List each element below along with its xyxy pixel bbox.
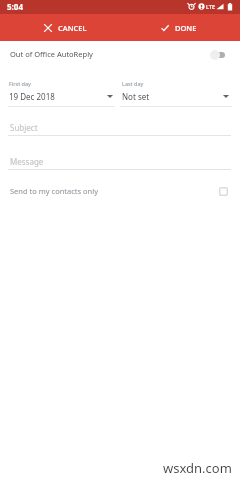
- staticText: DONE: [175, 23, 197, 33]
- staticText: CANCEL: [58, 23, 87, 33]
- staticText: Last day: [122, 80, 144, 87]
- staticText: Not set: [122, 91, 150, 102]
- staticText: LTE: [206, 3, 215, 10]
- staticText: Send to my contacts only: [10, 186, 98, 196]
- button[interactable]: DONE: [161, 23, 197, 33]
- staticText: First day: [9, 80, 31, 87]
- staticText: Out of Office AutoReply: [10, 49, 93, 59]
- staticText: Subject: [10, 122, 38, 133]
- button[interactable]: Out of Office AutoReply toggle, off: [205, 47, 231, 63]
- button[interactable]: Send to my contacts only: [0, 181, 240, 201]
- button[interactable]: Out of Office AutoReply: [0, 45, 240, 65]
- button[interactable]: Subject: [0, 116, 240, 139]
- button[interactable]: CANCEL: [44, 23, 87, 33]
- button[interactable]: First day: [9, 80, 113, 107]
- button[interactable]: Message: [0, 150, 240, 173]
- button[interactable]: Last day: [122, 80, 229, 107]
- staticText: 5:04: [7, 1, 23, 12]
- staticText: Message: [10, 156, 44, 167]
- staticText: 19 Dec 2018: [9, 91, 55, 102]
- staticText: wsxdn.com: [163, 459, 232, 477]
